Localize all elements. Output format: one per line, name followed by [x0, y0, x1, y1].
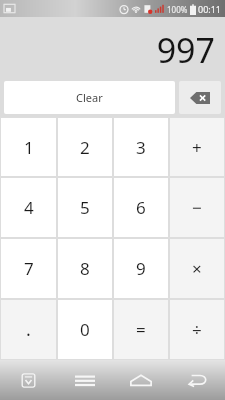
- button[interactable]: −: [170, 178, 224, 237]
- staticText: −: [192, 196, 202, 219]
- staticText: 00:11: [198, 3, 222, 15]
- button[interactable]: 2: [58, 118, 112, 176]
- staticText: ÷: [192, 318, 202, 341]
- staticText: 9: [136, 257, 146, 280]
- button[interactable]: 1: [1, 118, 56, 176]
- button[interactable]: 4: [1, 178, 56, 237]
- button[interactable]: ÷: [170, 300, 224, 359]
- button[interactable]: ×: [170, 239, 224, 298]
- button[interactable]: 5: [58, 178, 112, 237]
- staticText: 8: [80, 257, 90, 280]
- staticText: 2: [80, 136, 90, 159]
- staticText: +: [192, 136, 202, 159]
- staticText: Clear: [76, 90, 103, 105]
- staticText: 997: [156, 27, 215, 73]
- staticText: =: [136, 318, 146, 341]
- staticText: 0: [80, 318, 90, 341]
- button[interactable]: .: [1, 300, 56, 359]
- button[interactable]: Home: [113, 360, 169, 400]
- button[interactable]: =: [114, 300, 168, 359]
- staticText: 7: [24, 257, 34, 280]
- button[interactable]: 6: [114, 178, 168, 237]
- staticText: .: [26, 317, 31, 342]
- button[interactable]: Clear: [4, 81, 175, 114]
- button[interactable]: 7: [1, 239, 56, 298]
- staticText: 5: [80, 196, 90, 219]
- staticText: ×: [192, 257, 202, 280]
- button[interactable]: Backspace: [179, 81, 221, 114]
- staticText: 4: [24, 196, 34, 219]
- staticText: 1: [24, 136, 34, 159]
- button[interactable]: Menu: [57, 360, 113, 400]
- staticText: 6: [136, 196, 146, 219]
- button[interactable]: Back: [169, 360, 225, 400]
- button[interactable]: Screenshot: [0, 360, 57, 400]
- button[interactable]: 3: [114, 118, 168, 176]
- button[interactable]: 9: [114, 239, 168, 298]
- staticText: 3: [136, 136, 146, 159]
- button[interactable]: 8: [58, 239, 112, 298]
- button[interactable]: +: [170, 118, 224, 176]
- staticText: 100%: [167, 4, 188, 15]
- button[interactable]: 0: [58, 300, 112, 359]
